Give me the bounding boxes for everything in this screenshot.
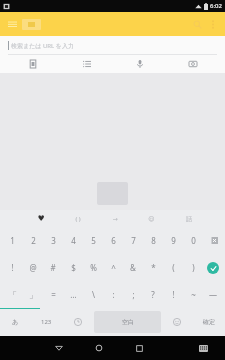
button[interactable]: ; <box>123 281 143 308</box>
staticText: 3 <box>51 235 56 246</box>
button[interactable]: 0 <box>183 227 203 254</box>
button[interactable]: 話 <box>170 210 207 227</box>
button[interactable]: ( <box>163 254 183 281</box>
button[interactable]: Menu <box>4 16 20 32</box>
button[interactable]: Home <box>79 336 119 360</box>
button[interactable]: 1 <box>2 227 23 254</box>
staticText: 6 <box>111 235 116 246</box>
button[interactable]: Recent <box>62 308 94 336</box>
staticText: ☺ <box>148 215 155 222</box>
button[interactable]: 6 <box>103 227 123 254</box>
button[interactable]: % <box>83 254 103 281</box>
button[interactable]: \ <box>83 281 103 308</box>
button[interactable]: Emoji <box>161 308 193 336</box>
button[interactable]: 7 <box>123 227 143 254</box>
staticText: 「 <box>9 290 17 300</box>
staticText: 5 <box>91 235 96 246</box>
button[interactable]: 「 <box>2 281 23 308</box>
staticText: 4 <box>71 235 76 246</box>
button[interactable]: Translate <box>6 55 60 73</box>
staticText: 確定 <box>203 318 215 326</box>
button[interactable]: 」 <box>23 281 43 308</box>
button[interactable]: 123 <box>31 308 62 336</box>
staticText: → <box>112 215 118 222</box>
staticText: ( <box>172 262 175 273</box>
button[interactable]: Camera search <box>166 55 219 73</box>
button[interactable]: Logo <box>22 19 41 30</box>
staticText: … <box>70 289 77 300</box>
staticText: 123 <box>41 318 52 326</box>
staticText: ) <box>192 262 195 273</box>
staticText: — <box>209 289 217 300</box>
button[interactable]: ) <box>183 254 203 281</box>
staticText: 2 <box>31 235 36 246</box>
staticText: 1 <box>10 235 15 246</box>
button[interactable]: Enter <box>203 254 223 281</box>
staticText: 8 <box>151 235 156 246</box>
button[interactable]: 5 <box>83 227 103 254</box>
button[interactable]: : <box>103 281 123 308</box>
button[interactable]: Keyboard <box>183 336 223 360</box>
staticText: 」 <box>29 290 37 300</box>
button[interactable]: 確定 <box>193 308 225 336</box>
button[interactable]: $ <box>63 254 83 281</box>
staticText: % <box>90 262 97 273</box>
button[interactable]: Backspace <box>203 227 223 254</box>
button[interactable]: Recents <box>119 336 159 360</box>
button[interactable]: & <box>123 254 143 281</box>
staticText: : <box>112 289 115 300</box>
button[interactable]: 空白 <box>94 311 161 333</box>
staticText: ; <box>132 289 135 300</box>
button[interactable]: → <box>96 210 133 227</box>
button[interactable]: … <box>63 281 83 308</box>
button[interactable]: ( ) <box>59 210 96 227</box>
staticText: 6:02 <box>210 2 222 10</box>
staticText: * <box>151 262 156 273</box>
staticText: 検索または URL を入力 <box>11 42 74 50</box>
button[interactable]: ! <box>2 254 23 281</box>
button[interactable]: ? <box>143 281 163 308</box>
staticText: ^ <box>111 262 116 273</box>
staticText: \ <box>92 289 95 300</box>
button[interactable]: ! <box>163 281 183 308</box>
button[interactable]: = <box>43 281 63 308</box>
button[interactable]: — <box>203 281 223 308</box>
button[interactable]: 9 <box>163 227 183 254</box>
staticText: @ <box>29 262 37 273</box>
staticText: 0 <box>191 235 196 246</box>
button[interactable]: 3 <box>43 227 63 254</box>
button[interactable]: ~ <box>183 281 203 308</box>
button[interactable]: ^ <box>103 254 123 281</box>
button[interactable]: Back <box>39 336 79 360</box>
button[interactable]: * <box>143 254 163 281</box>
staticText: ! <box>172 289 175 300</box>
staticText: ~ <box>191 289 196 300</box>
staticText: ! <box>11 262 14 273</box>
button[interactable]: 4 <box>63 227 83 254</box>
staticText: ? <box>151 289 155 300</box>
button[interactable]: ☺ <box>133 210 170 227</box>
staticText: 話 <box>186 215 192 223</box>
staticText: ( ) <box>75 215 81 223</box>
staticText: $ <box>71 262 76 273</box>
staticText: = <box>51 289 56 300</box>
button[interactable]: # <box>43 254 63 281</box>
button[interactable]: 8 <box>143 227 163 254</box>
staticText: 7 <box>131 235 136 246</box>
button[interactable]: 2 <box>23 227 43 254</box>
staticText: 9 <box>171 235 176 246</box>
staticText: 空白 <box>122 318 134 326</box>
button[interactable]: List <box>60 55 113 73</box>
staticText: & <box>130 262 136 273</box>
button[interactable]: Voice search <box>113 55 166 73</box>
button[interactable]: あ <box>0 308 31 336</box>
staticText: あ <box>12 318 19 326</box>
staticText: ♥ <box>37 214 45 223</box>
staticText: # <box>50 262 56 273</box>
button[interactable]: @ <box>23 254 43 281</box>
button[interactable]: ♥ <box>22 210 59 227</box>
